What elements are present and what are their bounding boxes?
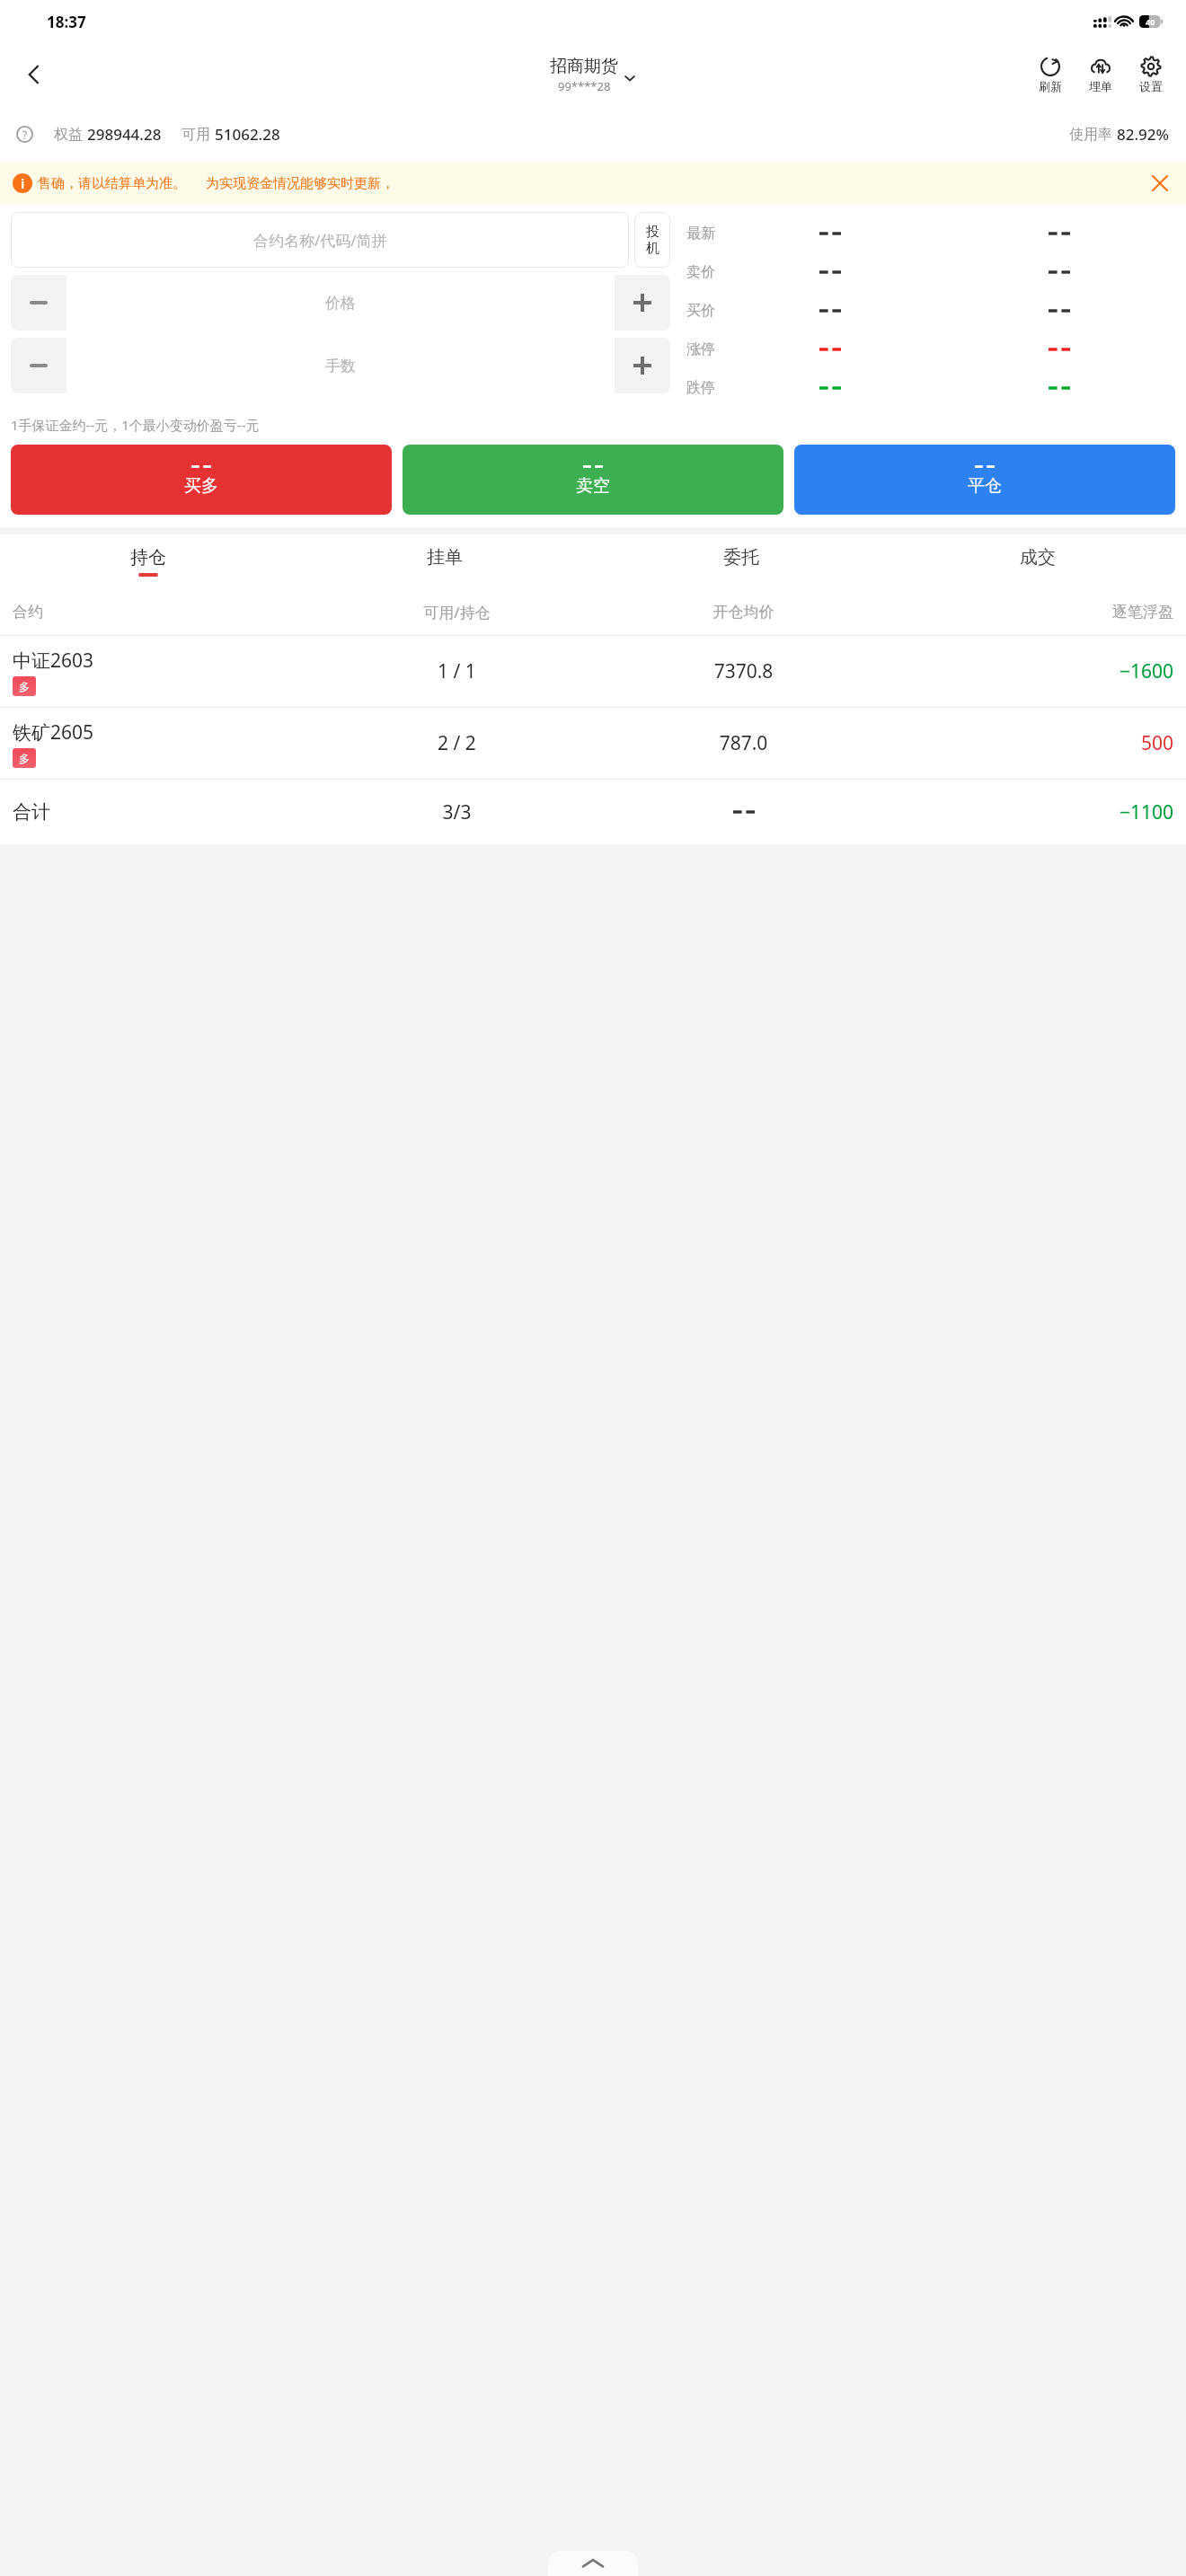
staticText: 刷新 <box>1039 79 1062 93</box>
staticText: 涨停 <box>686 340 715 358</box>
staticText: 卖价 <box>686 263 715 281</box>
staticText: 卖空 <box>576 475 610 497</box>
staticText: 多 <box>19 680 30 693</box>
button[interactable]: 持仓 <box>0 534 296 588</box>
button[interactable]: 挂单 <box>296 534 593 588</box>
staticText: 合约 <box>13 603 314 622</box>
button[interactable]: 成交 <box>889 534 1186 588</box>
button[interactable]: 招商期货 <box>550 56 636 94</box>
staticText: 跌停 <box>686 379 715 397</box>
staticText: 多 <box>19 752 30 765</box>
staticText: −1600 <box>887 658 1173 684</box>
staticText: −1100 <box>887 799 1173 825</box>
staticText: 成交 <box>1020 546 1056 569</box>
staticText: 最新 <box>686 225 715 243</box>
button[interactable]: Decrease 价格 <box>11 275 66 331</box>
button[interactable]: Decrease 手数 <box>11 338 66 393</box>
button[interactable]: 合约名称/代码/简拼 <box>11 212 629 268</box>
staticText: 3/3 <box>314 799 600 825</box>
staticText: 埋单 <box>1089 79 1112 93</box>
staticText: 挂单 <box>427 546 463 569</box>
staticText: 权益 <box>54 124 87 144</box>
button[interactable]: 铁矿2605 <box>0 708 1186 779</box>
button[interactable]: Back <box>13 53 56 96</box>
staticText: 买多 <box>184 475 218 497</box>
button[interactable]: 价格 <box>66 275 615 331</box>
staticText: 1手保证金约--元，1个最小变动价盈亏--元 <box>11 416 260 434</box>
staticText: 价格 <box>325 294 356 313</box>
staticText: 7370.8 <box>600 658 887 684</box>
staticText: 51062.28 <box>215 124 280 145</box>
button[interactable]: Increase 价格 <box>615 275 670 331</box>
staticText: 500 <box>887 730 1173 756</box>
staticText: 18:37 <box>47 12 86 32</box>
staticText: 设置 <box>1139 79 1163 93</box>
staticText: 平仓 <box>968 475 1002 497</box>
staticText: 开仓均价 <box>600 603 887 622</box>
staticText: 招商期货 <box>550 56 618 77</box>
button[interactable]: 委托 <box>593 534 889 588</box>
staticText: 使用率 <box>1069 124 1117 144</box>
staticText: 为实现资金情况能够实时更新， <box>206 175 394 192</box>
staticText: 99****28 <box>558 78 611 94</box>
button[interactable]: 卖空 <box>403 445 783 515</box>
button[interactable]: 中证2603 <box>0 636 1186 707</box>
staticText: 逐笔浮盈 <box>887 603 1173 622</box>
staticText: 铁矿2605 <box>13 719 94 745</box>
button[interactable]: Increase 手数 <box>615 338 670 393</box>
staticText: 2 / 2 <box>314 730 600 756</box>
button[interactable]: Expand <box>548 2551 638 2576</box>
button[interactable]: 设置 <box>1128 54 1173 95</box>
staticText: 40 <box>1146 16 1155 27</box>
staticText: 可用 <box>181 124 215 144</box>
staticText: 1 / 1 <box>314 658 600 684</box>
staticText: 合约名称/代码/简拼 <box>253 230 387 251</box>
staticText: 可用/持仓 <box>314 602 600 622</box>
button[interactable]: 投 机 <box>634 212 670 268</box>
button[interactable]: 埋单 <box>1078 54 1123 95</box>
staticText: 中证2603 <box>13 648 94 674</box>
staticText: 合计 <box>13 800 314 824</box>
staticText: i <box>21 175 25 192</box>
button[interactable]: Close <box>1145 168 1175 198</box>
staticText: 售确，请以结算单为准。 <box>38 175 186 192</box>
staticText: 持仓 <box>130 546 166 569</box>
button[interactable]: 平仓 <box>794 445 1175 515</box>
button[interactable]: 买多 <box>11 445 392 515</box>
staticText: 82.92% <box>1117 124 1170 145</box>
staticText: 298944.28 <box>87 124 162 145</box>
staticText: 买价 <box>686 302 715 320</box>
staticText: 委托 <box>723 546 759 569</box>
button[interactable]: 刷新 <box>1028 54 1073 95</box>
staticText: ? <box>22 128 28 142</box>
staticText: 投 机 <box>646 224 659 257</box>
staticText: 787.0 <box>600 730 887 756</box>
staticText: 手数 <box>325 357 356 375</box>
button[interactable]: 手数 <box>66 338 615 393</box>
